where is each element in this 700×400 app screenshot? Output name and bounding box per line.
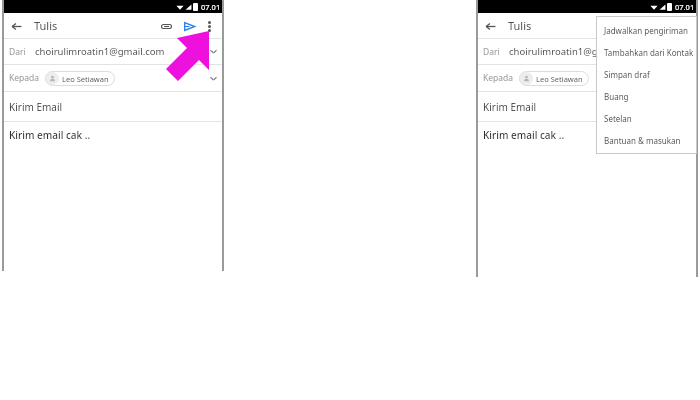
button[interactable]: Kepada (2, 65, 224, 91)
staticText: Buang (604, 91, 629, 102)
button[interactable]: Kirim email cak .. (2, 122, 224, 148)
staticText: Setelan (604, 113, 632, 124)
button[interactable]: Setelan (596, 107, 697, 129)
button[interactable]: Attach file (631, 17, 649, 35)
staticText: Tulis (508, 18, 532, 33)
button[interactable]: Kepada (476, 65, 698, 91)
staticText: 07.01 (675, 2, 695, 12)
staticText: Kirim email cak .. (9, 128, 91, 142)
staticText: Tulis (34, 18, 58, 33)
button[interactable]: Send (180, 17, 198, 35)
staticText: Kirim email cak .. (483, 128, 565, 142)
staticText: Kepada (483, 72, 514, 84)
staticText: Kirim Email (483, 100, 537, 114)
button[interactable]: Kirim Email (2, 92, 224, 121)
button[interactable]: Attach file (157, 17, 175, 35)
staticText: choirulimroatin1@gmail.com (35, 45, 165, 58)
staticText: Dari (483, 46, 500, 58)
button[interactable]: Tambahkan dari Kontak (596, 41, 697, 63)
button[interactable]: Dari (476, 39, 698, 64)
button[interactable]: More options (674, 17, 692, 35)
staticText: Simpan draf (604, 69, 650, 80)
staticText: Kepada (9, 72, 40, 84)
button[interactable]: Kirim email cak .. (476, 122, 698, 148)
staticText: Leo Setiawan (536, 74, 583, 84)
button[interactable]: Jadwalkan pengiriman (596, 19, 697, 41)
staticText: Jadwalkan pengiriman (604, 25, 688, 36)
staticText: Tambahkan dari Kontak (604, 47, 694, 58)
staticText: Kirim Email (9, 100, 63, 114)
staticText: choirulimroatin1@gmail.com (509, 45, 639, 58)
button[interactable]: Simpan draf (596, 63, 697, 85)
button[interactable]: Dari (2, 39, 224, 64)
button[interactable]: Back (481, 17, 499, 35)
staticText: Leo Setiawan (62, 74, 109, 84)
button[interactable]: Bantuan & masukan (596, 129, 697, 151)
button[interactable]: Kirim Email (476, 92, 698, 121)
button[interactable]: More options (200, 17, 218, 35)
button[interactable]: Send (654, 17, 672, 35)
staticText: Dari (9, 46, 26, 58)
button[interactable]: Back (7, 17, 25, 35)
staticText: Bantuan & masukan (604, 135, 681, 146)
button[interactable]: Buang (596, 85, 697, 107)
staticText: 07.01 (201, 2, 221, 12)
